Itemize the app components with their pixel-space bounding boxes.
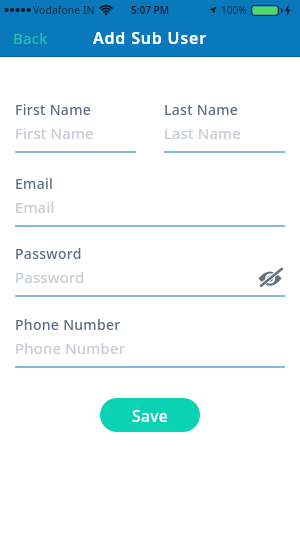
- button[interactable]: Save: [100, 398, 200, 432]
- staticText: Password: [15, 244, 82, 263]
- button[interactable]: Last Name: [164, 123, 285, 143]
- button[interactable]: Phone Number: [15, 338, 285, 358]
- staticText: Save: [132, 405, 169, 426]
- staticText: 100%: [221, 3, 247, 17]
- button[interactable]: Back: [13, 28, 48, 48]
- button[interactable]: Email: [15, 197, 285, 217]
- staticText: Email: [15, 197, 55, 217]
- staticText: Add Sub User: [93, 27, 207, 49]
- staticText: Last Name: [164, 100, 239, 119]
- staticText: First Name: [15, 123, 94, 143]
- staticText: Email: [15, 174, 54, 193]
- button[interactable]: First Name: [15, 123, 136, 143]
- staticText: Phone Number: [15, 315, 121, 334]
- button[interactable]: [257, 267, 285, 287]
- staticText: Last Name: [164, 123, 241, 143]
- staticText: 5:07 PM: [131, 3, 169, 17]
- staticText: Back: [13, 28, 48, 48]
- staticText: First Name: [15, 100, 92, 119]
- button[interactable]: Password: [15, 267, 285, 287]
- staticText: Vodafone IN: [33, 3, 95, 17]
- staticText: Phone Number: [15, 338, 126, 358]
- staticText: Password: [15, 267, 85, 287]
